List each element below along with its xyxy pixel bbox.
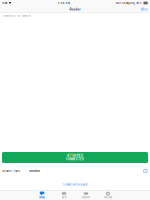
staticText: Shuttle [29, 169, 40, 173]
button[interactable]: Connect with Reader [0, 179, 150, 190]
staticText: Reader [69, 8, 80, 11]
button[interactable]: Settings [97, 190, 119, 200]
button[interactable]: About this reader [143, 168, 148, 173]
staticText: Reader Type: [2, 169, 21, 173]
staticText: ATTACHED [67, 154, 83, 157]
staticText: Sales [61, 196, 66, 199]
button[interactable]: Reader [31, 190, 53, 200]
staticText: iPad [2, 1, 8, 5]
button[interactable]: Mini [139, 7, 150, 12]
staticText: i [145, 169, 146, 173]
button[interactable]: Sales [53, 190, 75, 200]
staticText: Payment [82, 196, 90, 199]
staticText: Settings [104, 196, 112, 199]
staticText: Connected to: not connected [2, 14, 30, 17]
staticText: Reader [39, 196, 45, 199]
staticText: Connect with Reader [62, 183, 87, 186]
staticText: 76% [136, 1, 142, 5]
staticText: 3:58 PM [58, 1, 70, 5]
button[interactable]: Payment [75, 190, 97, 200]
staticText: Not Charging [116, 1, 135, 5]
staticText: CONNECTED [66, 158, 84, 161]
staticText: Mini [141, 8, 148, 11]
